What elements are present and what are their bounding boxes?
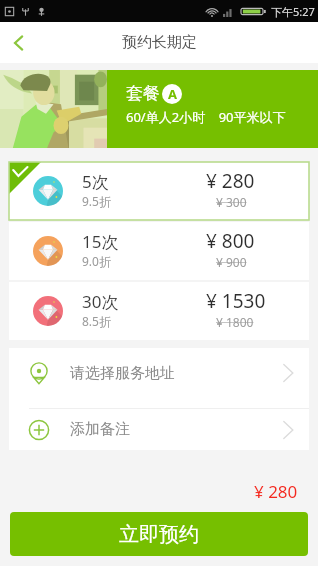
- button[interactable]: 添加备注: [9, 409, 309, 450]
- staticText: ¥ 800: [206, 228, 255, 254]
- staticText: ¥ 280: [254, 480, 298, 503]
- staticText: 9.5折: [82, 193, 111, 209]
- button[interactable]: Back: [0, 24, 38, 62]
- staticText: 请选择服务地址: [70, 364, 175, 383]
- staticText: 30次: [82, 290, 119, 313]
- button[interactable]: 请选择服务地址: [9, 348, 309, 398]
- button[interactable]: 15次: [9, 222, 309, 280]
- staticText: 立即预约: [119, 522, 199, 547]
- staticText: 15次: [82, 230, 119, 253]
- staticText: 预约长期定: [122, 33, 197, 52]
- staticText: ¥ 900: [216, 254, 247, 270]
- button[interactable]: 5次: [9, 162, 309, 220]
- staticText: A: [168, 85, 177, 103]
- staticText: 添加备注: [70, 420, 130, 439]
- staticText: 8.5折: [82, 313, 111, 329]
- staticText: 套餐: [126, 83, 160, 104]
- staticText: 9.0折: [82, 253, 111, 269]
- staticText: 60/单人2小时 90平米以下: [126, 108, 286, 126]
- button[interactable]: 立即预约: [10, 512, 308, 556]
- button[interactable]: 30次: [9, 282, 309, 340]
- staticText: ¥ 280: [206, 168, 255, 194]
- staticText: 下午5:27: [271, 4, 315, 19]
- staticText: ¥ 300: [216, 194, 247, 210]
- staticText: ¥ 1530: [206, 288, 266, 314]
- staticText: 5次: [82, 170, 109, 193]
- staticText: ¥ 1800: [216, 314, 254, 330]
